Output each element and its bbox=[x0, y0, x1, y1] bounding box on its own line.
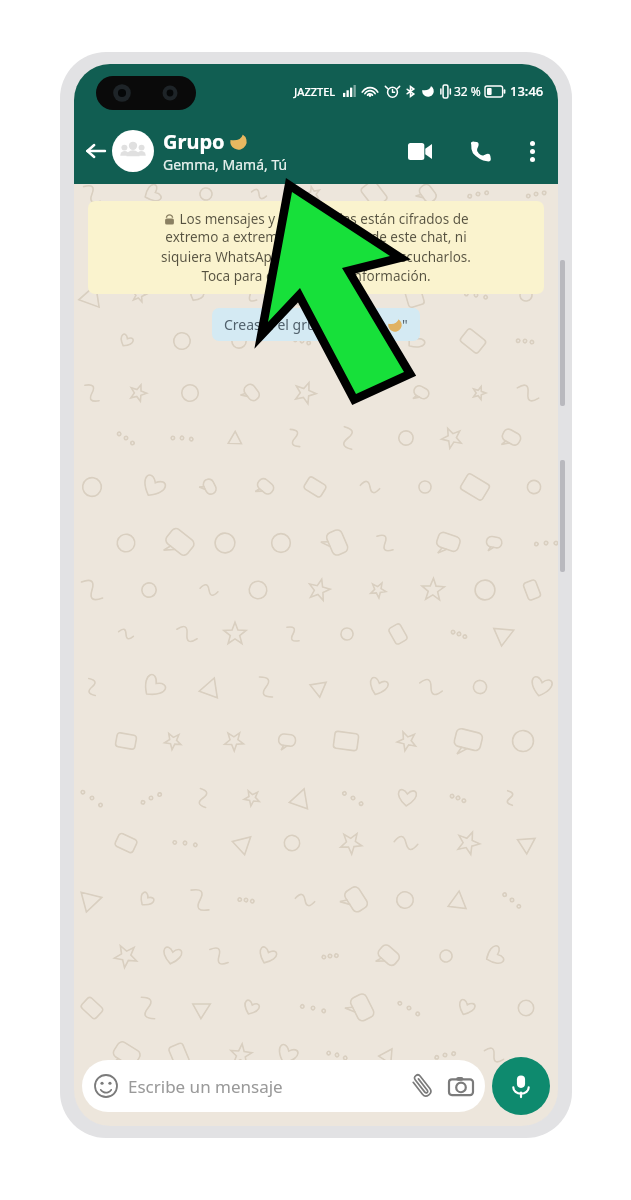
button[interactable]: Creaste el grupo "Grupo bbox=[212, 308, 420, 341]
button[interactable]: Camera bbox=[449, 1074, 473, 1098]
button[interactable]: Emoji bbox=[94, 1074, 118, 1098]
staticText: Creaste el grupo "Grupo bbox=[224, 315, 384, 334]
staticText: Los mensajes y las llamadas están cifrad… bbox=[179, 210, 469, 228]
staticText: Grupo bbox=[163, 128, 225, 155]
staticText: Escribe un mensaje bbox=[128, 1075, 409, 1098]
button[interactable]: Voice message bbox=[492, 1057, 550, 1115]
staticText: extremo a extremo. Nadie fuera de este c… bbox=[161, 228, 471, 285]
staticText: 13:46 bbox=[510, 82, 544, 100]
button[interactable]: Video call bbox=[400, 131, 440, 171]
staticText: 32 % bbox=[454, 83, 481, 99]
staticText: " bbox=[402, 315, 408, 334]
button[interactable]: More options bbox=[512, 131, 552, 171]
button[interactable]: Los mensajes y las llamadas están cifrad… bbox=[88, 201, 544, 294]
staticText: JAZZTEL bbox=[294, 84, 336, 99]
button[interactable]: Back bbox=[74, 118, 558, 184]
button[interactable]: Back bbox=[78, 134, 112, 168]
button[interactable]: Voice call bbox=[460, 131, 500, 171]
button[interactable]: Attach bbox=[409, 1073, 435, 1099]
button[interactable]: Emoji bbox=[82, 1060, 485, 1112]
staticText: Gemma, Mamá, Tú bbox=[163, 155, 288, 174]
